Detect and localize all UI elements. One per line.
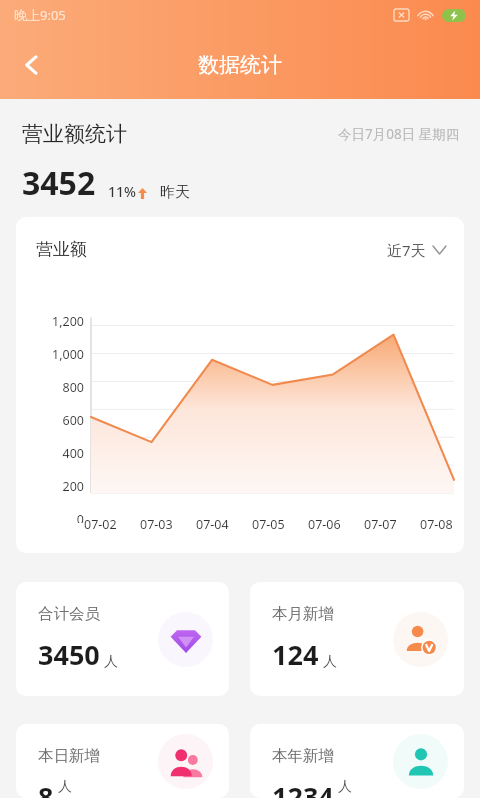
staticText: 07-04 [196,516,229,533]
staticText: 8 [38,778,54,798]
staticText: 晚上9:05 [14,6,66,24]
staticText: 本日新增 [38,746,100,766]
staticText: 营业额统计 [22,121,127,147]
staticText: 200 [62,478,84,495]
staticText: 600 [62,412,84,429]
staticText: 合计会员 [38,604,100,624]
staticText: 07-05 [252,516,285,533]
staticText: 07-08 [420,516,453,533]
staticText: 0 [76,511,84,523]
staticText: 营业额 [36,239,87,260]
button[interactable]: 合计会员 [16,582,229,696]
staticText: 1,000 [52,346,84,363]
button[interactable]: Back [8,41,56,89]
button[interactable]: 本月新增 [250,582,464,696]
button[interactable]: 本日新增 [16,724,229,798]
staticText: 数据统计 [198,52,282,78]
staticText: 1,200 [52,313,84,330]
staticText: 今日7月08日 星期四 [338,125,460,143]
button[interactable]: 本年新增 [250,724,464,798]
staticText: 07-03 [140,516,173,533]
staticText: 人 [104,653,118,671]
staticText: 本年新增 [272,746,334,766]
staticText: 07-07 [364,516,397,533]
staticText: 400 [62,445,84,462]
staticText: 人 [338,778,352,796]
staticText: 1234 [272,778,334,798]
staticText: 人 [58,778,72,796]
button[interactable]: 近7天 [387,240,446,260]
staticText: 800 [62,379,84,396]
staticText: 124 [272,636,319,673]
staticText: 人 [323,653,337,671]
staticText: 11% [108,182,136,201]
staticText: 本月新增 [272,604,334,624]
staticText: 近7天 [387,240,426,260]
staticText: 3452 [22,161,96,205]
staticText: 3450 [38,636,100,673]
staticText: 07-02 [84,516,117,533]
staticText: 07-06 [308,516,341,533]
staticText: 昨天 [160,183,190,202]
